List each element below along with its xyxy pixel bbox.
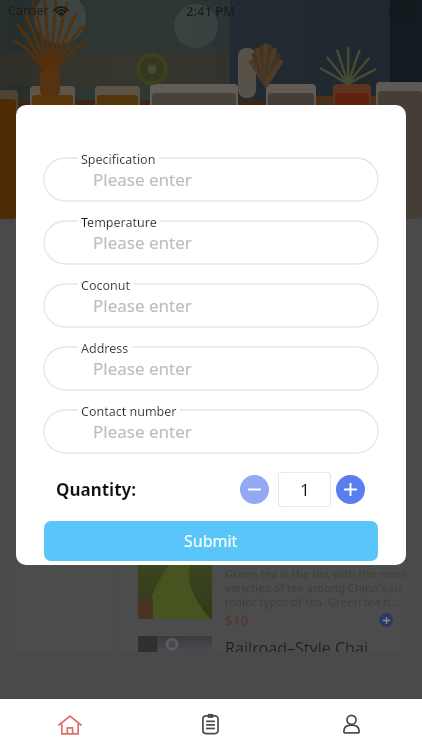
button[interactable]: Decrease quantity xyxy=(240,475,269,504)
staticText: Temperature xyxy=(81,214,157,231)
staticText: 1 xyxy=(300,478,310,501)
staticText: Please enter xyxy=(93,294,192,317)
button[interactable]: Submit xyxy=(44,521,378,561)
button[interactable]: Orders xyxy=(140,699,281,750)
button[interactable]: 1 xyxy=(278,472,331,507)
staticText: Carrier xyxy=(8,2,49,19)
staticText: Coconut xyxy=(81,277,130,294)
staticText: Please enter xyxy=(93,168,192,191)
staticText: Contact number xyxy=(81,403,177,420)
staticText: $10 xyxy=(225,612,249,627)
staticText: Please enter xyxy=(93,231,192,254)
button[interactable]: Add to cart xyxy=(379,613,393,627)
staticText: 2:41 PM xyxy=(186,2,236,20)
staticText: Please enter xyxy=(93,357,192,380)
staticText: Railroad–Style Chai xyxy=(225,637,369,652)
button[interactable] xyxy=(16,500,119,652)
button[interactable]: Profile xyxy=(281,699,422,750)
button[interactable]: Increase quantity xyxy=(336,475,365,504)
button[interactable]: Green tea is the tea with the most varie… xyxy=(120,556,406,627)
button[interactable]: Railroad–Style Chai xyxy=(120,627,406,652)
staticText: Specification xyxy=(81,151,156,168)
button[interactable]: Home xyxy=(0,699,140,750)
staticText: Address xyxy=(81,340,129,357)
staticText: Please enter xyxy=(93,420,192,443)
staticText: Green tea is the tea with the most varie… xyxy=(225,566,405,609)
staticText: Submit xyxy=(184,530,238,552)
staticText: Quantity: xyxy=(56,478,137,501)
